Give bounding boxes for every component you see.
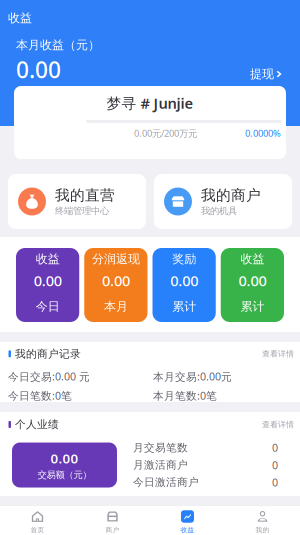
button[interactable]: 收益 xyxy=(150,505,225,535)
staticText: 月交易笔数 xyxy=(133,441,188,454)
button[interactable]: 奖励 xyxy=(152,248,216,322)
staticText: 收益 xyxy=(180,526,194,534)
button[interactable]: 分润返现 xyxy=(84,248,147,322)
staticText: 0.0000% xyxy=(245,127,281,139)
staticText: 梦寻 # Junjie xyxy=(106,93,193,113)
staticText: 0.00 xyxy=(170,271,198,290)
staticText: 0.00 xyxy=(34,271,62,290)
staticText: 本月笔数:0笔 xyxy=(153,388,217,403)
staticText: 收益 xyxy=(36,252,60,266)
staticText: 0.00 xyxy=(238,271,266,290)
staticText: 今日激活商户 xyxy=(133,476,199,489)
staticText: 我的商户记录 xyxy=(15,347,81,360)
staticText: 0.00 xyxy=(16,54,61,84)
staticText: 累计 xyxy=(240,299,264,314)
button[interactable]: 收益 xyxy=(16,248,79,322)
staticText: 我的商户 xyxy=(201,186,261,204)
staticText: 查看详情 xyxy=(262,420,294,429)
staticText: 本月交易:0.00元 xyxy=(153,369,232,383)
button[interactable]: 商户 xyxy=(75,505,150,535)
staticText: 商户 xyxy=(105,526,119,534)
staticText: 0 xyxy=(272,458,278,472)
staticText: 今日笔数:0笔 xyxy=(8,388,72,403)
staticText: 我的 xyxy=(255,526,269,534)
staticText: 我的机具 xyxy=(201,205,237,217)
staticText: 本月 xyxy=(104,299,128,314)
button[interactable]: 提现 xyxy=(250,67,283,84)
button[interactable]: 查看详情 xyxy=(262,420,294,429)
button[interactable]: 我的直营 xyxy=(8,174,146,229)
button[interactable]: 首页 xyxy=(0,505,75,535)
staticText: 奖励 xyxy=(172,252,196,266)
staticText: 终端管理中心 xyxy=(55,205,109,217)
staticText: 0.00 xyxy=(102,271,130,290)
staticText: 收益 xyxy=(240,252,264,266)
button[interactable]: 收益 xyxy=(221,248,284,322)
staticText: 收益 xyxy=(8,11,32,25)
staticText: 提现 xyxy=(250,67,274,81)
staticText: 交易额（元） xyxy=(37,469,91,481)
staticText: 0 xyxy=(272,441,278,455)
staticText: 分润返现 xyxy=(92,252,140,266)
staticText: 0 xyxy=(272,475,278,489)
staticText: 个人业绩 xyxy=(15,418,59,431)
staticText: 累计 xyxy=(172,299,196,314)
staticText: 查看详情 xyxy=(262,349,294,359)
button[interactable]: 我的 xyxy=(225,505,300,535)
staticText: 我的直营 xyxy=(55,186,115,204)
button[interactable]: 查看详情 xyxy=(262,349,294,359)
staticText: 今日交易:0.00 元 xyxy=(8,369,90,383)
staticText: 0.00 xyxy=(50,449,78,467)
staticText: 今日 xyxy=(36,299,60,314)
staticText: 0.00元/200万元 xyxy=(134,127,197,139)
staticText: 本月收益（元） xyxy=(16,38,100,52)
button[interactable]: 我的商户 xyxy=(154,174,292,229)
staticText: 首页 xyxy=(30,526,44,534)
staticText: 月激活商户 xyxy=(133,458,188,471)
